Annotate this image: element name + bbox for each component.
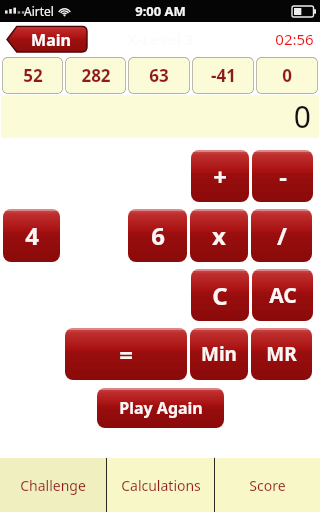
staticText: - — [279, 160, 287, 193]
staticText: 02:56 — [275, 29, 314, 49]
button[interactable]: C — [191, 269, 249, 321]
button[interactable]: Main — [6, 26, 88, 53]
button[interactable]: Play Again — [97, 388, 224, 428]
staticText: -41 — [211, 64, 236, 87]
button[interactable]: 63 — [128, 57, 190, 94]
button[interactable]: AC — [252, 269, 313, 321]
button[interactable]: Min — [190, 328, 248, 380]
staticText: Challenge — [20, 476, 86, 495]
staticText: 52 — [23, 64, 43, 87]
staticText: Min — [201, 341, 237, 367]
staticText: Score — [249, 476, 286, 495]
staticText: MR — [266, 341, 297, 367]
button[interactable]: 6 — [128, 209, 187, 262]
staticText: 6 — [151, 219, 165, 252]
staticText: x — [212, 219, 226, 252]
staticText: Play Again — [119, 397, 203, 419]
button[interactable]: x — [190, 209, 248, 262]
button[interactable]: 52 — [2, 57, 63, 94]
staticText: Airtel — [24, 3, 54, 19]
button[interactable]: MR — [251, 328, 312, 380]
button[interactable]: Score — [215, 458, 320, 512]
staticText: 282 — [81, 64, 111, 87]
staticText: 63 — [149, 64, 169, 87]
button[interactable]: Calculations — [107, 458, 214, 512]
staticText: = — [119, 338, 133, 371]
staticText: + — [213, 160, 227, 193]
staticText: Main — [31, 29, 71, 51]
staticText: / — [277, 219, 287, 252]
button[interactable]: + — [191, 150, 249, 202]
button[interactable]: = — [65, 328, 187, 380]
button[interactable]: - — [252, 150, 313, 202]
button[interactable]: -41 — [192, 57, 254, 94]
button[interactable]: 282 — [65, 57, 126, 94]
button[interactable]: / — [251, 209, 312, 262]
staticText: C — [212, 279, 228, 312]
button[interactable]: 0 — [256, 57, 318, 94]
button[interactable]: Challenge — [0, 458, 106, 512]
staticText: Calculations — [121, 476, 201, 495]
staticText: AC — [269, 281, 297, 310]
button[interactable]: 4 — [3, 209, 60, 262]
staticText: 0 — [282, 64, 292, 87]
staticText: 4 — [25, 219, 39, 252]
staticText: 9:00 AM — [135, 2, 186, 20]
staticText: 0 — [293, 96, 311, 137]
